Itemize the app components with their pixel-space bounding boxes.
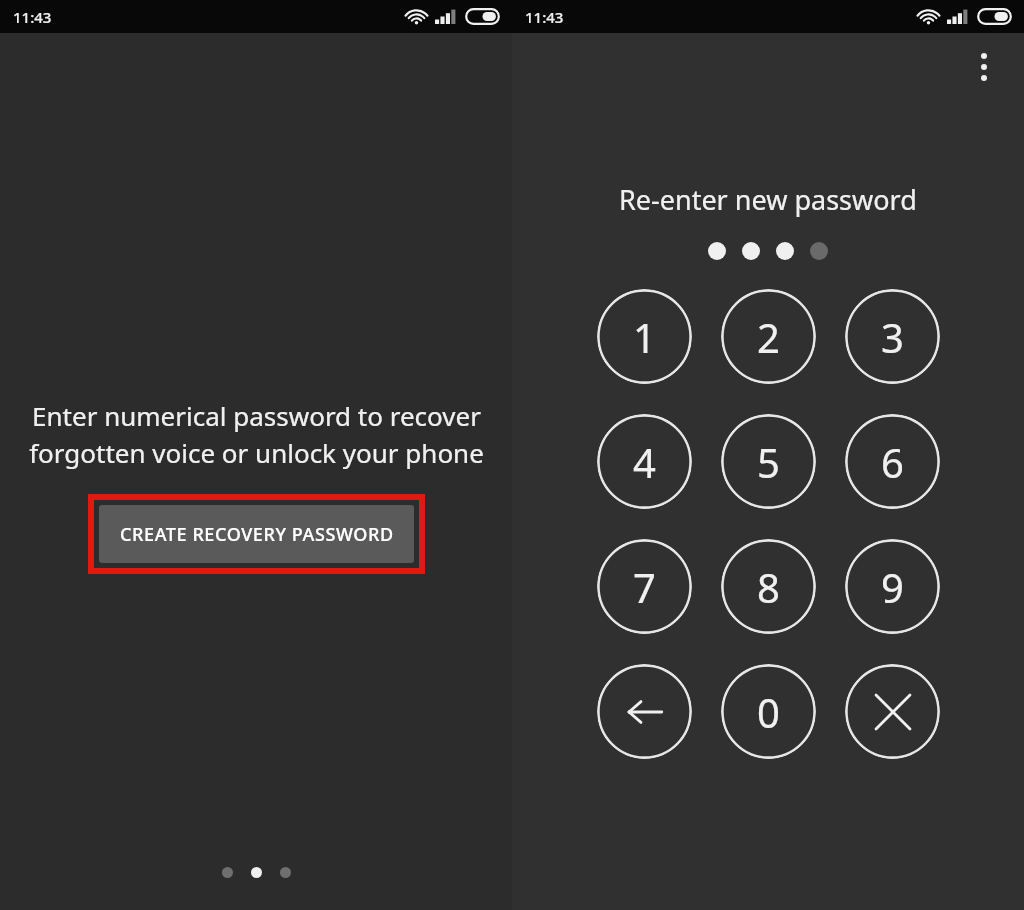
button[interactable]: 2 [721, 289, 816, 384]
button[interactable]: Clear [845, 664, 940, 759]
staticText: 2 [757, 310, 780, 364]
staticText: 11:43 [13, 7, 52, 27]
button[interactable]: Backspace [597, 664, 692, 759]
button[interactable]: 7 [597, 539, 692, 634]
staticText: 9 [881, 560, 904, 614]
staticText: Enter numerical password to recover forg… [29, 398, 484, 471]
button[interactable]: 0 [721, 664, 816, 759]
button[interactable]: 9 [845, 539, 940, 634]
staticText: 4 [633, 435, 656, 489]
button[interactable]: 6 [845, 414, 940, 509]
staticText: 7 [633, 560, 656, 614]
staticText: 6 [881, 435, 904, 489]
staticText: 1 [633, 310, 656, 364]
button[interactable]: 3 [845, 289, 940, 384]
button[interactable]: 8 [721, 539, 816, 634]
button[interactable]: 4 [597, 414, 692, 509]
button[interactable]: CREATE RECOVERY PASSWORD [99, 505, 414, 563]
staticText: 3 [881, 310, 904, 364]
button[interactable]: More options [962, 45, 1006, 89]
button[interactable]: 1 [597, 289, 692, 384]
staticText: 8 [757, 560, 780, 614]
staticText: 5 [757, 435, 780, 489]
staticText: CREATE RECOVERY PASSWORD [120, 522, 394, 547]
staticText: 11:43 [525, 7, 564, 27]
staticText: 0 [757, 685, 780, 739]
button[interactable]: 5 [721, 414, 816, 509]
staticText: Re-enter new password [619, 181, 917, 218]
